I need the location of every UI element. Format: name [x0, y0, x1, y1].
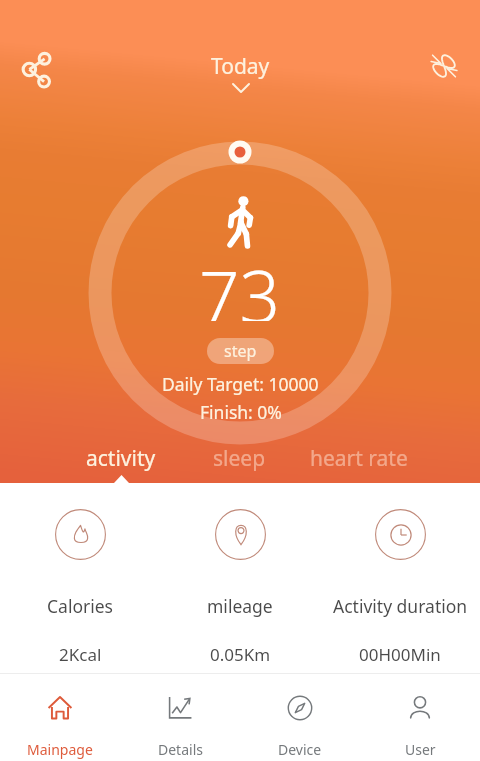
button[interactable]: Details [120, 689, 240, 761]
staticText: Today [211, 52, 270, 81]
staticText: Mainpage [27, 740, 93, 759]
staticText: Finish: 0% [200, 400, 282, 424]
button[interactable]: Calories [0, 509, 160, 666]
staticText: 2Kcal [59, 643, 102, 666]
staticText: Activity duration [333, 594, 468, 618]
staticText: heart rate [310, 444, 408, 473]
staticText: Daily Target: 10000 [162, 372, 319, 396]
staticText: step [224, 340, 257, 362]
button[interactable]: Activity duration [320, 509, 480, 666]
staticText: 0.05Km [210, 643, 271, 666]
button[interactable]: step [207, 338, 274, 364]
staticText: mileage [207, 594, 273, 618]
staticText: 73 [199, 247, 281, 321]
button[interactable]: mileage [160, 509, 320, 666]
button[interactable]: activity [62, 433, 180, 483]
staticText: Device [278, 740, 322, 759]
staticText: activity [86, 444, 156, 473]
button[interactable]: sleep [180, 433, 299, 483]
staticText: 00H00Min [359, 643, 441, 666]
button[interactable]: Mainpage [0, 689, 120, 761]
staticText: User [405, 740, 436, 759]
button[interactable]: Share [4, 37, 68, 101]
button[interactable]: Sync [412, 34, 476, 98]
staticText: Calories [47, 594, 113, 618]
staticText: sleep [213, 444, 266, 473]
button[interactable]: heart rate [299, 433, 418, 483]
button[interactable]: User [360, 689, 480, 761]
button[interactable]: Device [240, 689, 360, 761]
staticText: Details [158, 740, 203, 759]
button[interactable]: Today [211, 52, 270, 92]
